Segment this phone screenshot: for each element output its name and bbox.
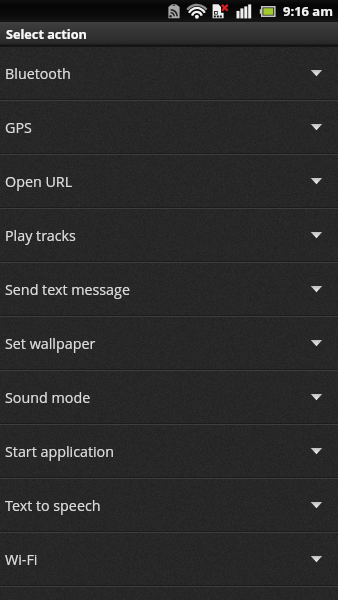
staticText: Start application [5,442,114,461]
button[interactable]: Open URL [0,155,338,209]
button[interactable]: Bluetooth [0,47,338,101]
staticText: Bluetooth [5,64,71,83]
button[interactable]: Text to speech [0,479,338,533]
staticText: Set wallpaper [5,334,96,353]
button[interactable]: Wi-Fi [0,533,338,587]
button[interactable]: Sound mode [0,371,338,425]
staticText: Send text message [5,280,130,299]
staticText: GPS [5,118,32,137]
staticText: Play tracks [5,226,76,245]
staticText: Wi-Fi [5,550,38,569]
button[interactable]: GPS [0,101,338,155]
button[interactable]: Start application [0,425,338,479]
button[interactable]: Play tracks [0,209,338,263]
staticText: Sound mode [5,388,91,407]
staticText: Select action [6,25,87,42]
staticText: 9:16 am [283,2,333,20]
staticText: Text to speech [5,496,101,515]
button[interactable]: Set wallpaper [0,317,338,371]
button[interactable]: Send text message [0,263,338,317]
staticText: Open URL [5,172,73,191]
